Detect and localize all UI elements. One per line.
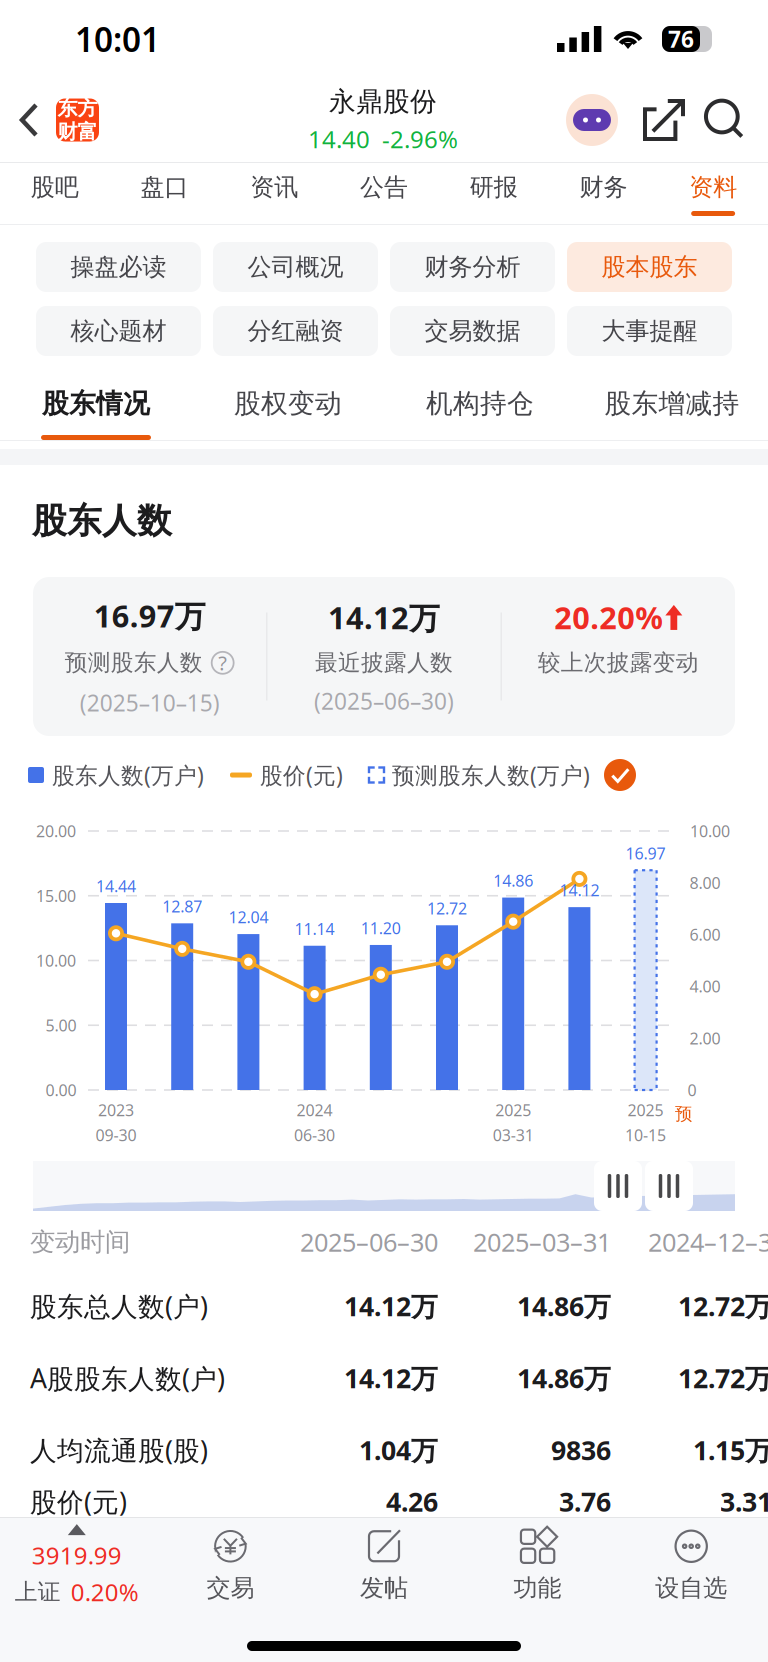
staticText: 功能 bbox=[514, 1573, 562, 1603]
button[interactable]: 股吧 bbox=[0, 163, 110, 224]
staticText: 预测股东人数(万户) bbox=[392, 760, 590, 790]
staticText: 财务分析 bbox=[424, 252, 520, 282]
button[interactable]: 财务 bbox=[549, 163, 658, 224]
button[interactable]: Back bbox=[0, 78, 56, 162]
button[interactable]: 股权变动 bbox=[192, 366, 384, 440]
staticText: 永鼎股份 bbox=[329, 85, 437, 118]
staticText: 14.86万 bbox=[517, 1360, 611, 1396]
staticText: ? bbox=[218, 649, 227, 676]
staticText: 较上次披露变动 bbox=[538, 649, 699, 677]
button[interactable]: 交易 bbox=[154, 1529, 307, 1603]
staticText: 研报 bbox=[470, 172, 518, 202]
staticText: 20.00 bbox=[36, 820, 76, 842]
staticText: 14.40 -2.96% bbox=[308, 123, 458, 155]
staticText: 10-15 bbox=[625, 1124, 666, 1146]
staticText: 人均流通股(股) bbox=[30, 1432, 208, 1468]
staticText: 财富 bbox=[57, 119, 97, 144]
button[interactable]: 研报 bbox=[439, 163, 549, 224]
staticText: 股东总人数(户) bbox=[30, 1288, 208, 1324]
button[interactable]: 操盘必读 bbox=[36, 242, 201, 292]
button[interactable]: AI assistant bbox=[564, 92, 620, 148]
button[interactable]: Range handle bbox=[645, 1161, 693, 1211]
staticText: 0.00 bbox=[45, 1079, 76, 1101]
button[interactable]: 发帖 bbox=[307, 1529, 461, 1603]
button[interactable]: Share bbox=[638, 94, 690, 146]
staticText: 14.86万 bbox=[517, 1288, 611, 1324]
staticText: 14.12万 bbox=[344, 1288, 438, 1324]
staticText: 股价(元) bbox=[260, 760, 343, 790]
staticText: 股价(元) bbox=[30, 1484, 127, 1519]
button[interactable]: East Money bbox=[56, 98, 99, 141]
staticText: 16.97 bbox=[626, 843, 666, 864]
staticText: A股股东人数(户) bbox=[30, 1360, 225, 1396]
button[interactable]: 功能 bbox=[461, 1529, 614, 1603]
staticText: 设自选 bbox=[655, 1573, 727, 1603]
staticText: 公告 bbox=[360, 172, 408, 202]
staticText: 0 bbox=[687, 1079, 696, 1101]
staticText: 11.20 bbox=[361, 917, 401, 938]
staticText: 3919.99 bbox=[32, 1539, 122, 1571]
button[interactable]: 股东情况 bbox=[0, 366, 192, 440]
staticText: 2.00 bbox=[689, 1028, 720, 1049]
staticText: 14.12万 bbox=[344, 1360, 438, 1396]
button[interactable]: 资讯 bbox=[219, 163, 329, 224]
button[interactable]: 交易数据 bbox=[390, 306, 555, 356]
button[interactable]: 分红融资 bbox=[213, 306, 378, 356]
staticText: 2025 bbox=[495, 1099, 531, 1121]
staticText: 8.00 bbox=[689, 872, 720, 893]
staticText: 上证 bbox=[15, 1578, 61, 1606]
staticText: 股吧 bbox=[31, 172, 79, 202]
button[interactable]: 核心题材 bbox=[36, 306, 201, 356]
button[interactable]: 设自选 bbox=[614, 1529, 768, 1603]
button[interactable]: 盘口 bbox=[110, 163, 219, 224]
staticText: 财务 bbox=[579, 172, 627, 202]
staticText: 分红融资 bbox=[247, 316, 343, 346]
button[interactable]: 机构持仓 bbox=[384, 366, 576, 440]
staticText: 16.97万 bbox=[94, 595, 206, 636]
staticText: 0.20% bbox=[71, 1576, 139, 1608]
staticText: 03-31 bbox=[493, 1124, 534, 1146]
staticText: 12.72万 bbox=[678, 1360, 768, 1396]
staticText: 20.20% bbox=[554, 597, 663, 638]
staticText: 12.72 bbox=[427, 898, 467, 919]
button[interactable]: 股东增减持 bbox=[576, 366, 768, 440]
staticText: 6.00 bbox=[689, 924, 720, 945]
staticText: 5.00 bbox=[45, 1015, 76, 1036]
staticText: 操盘必读 bbox=[70, 252, 166, 282]
staticText: 14.86 bbox=[493, 870, 533, 891]
staticText: 4.26 bbox=[386, 1484, 438, 1519]
staticText: 12.04 bbox=[228, 906, 268, 928]
staticText: 2025 bbox=[628, 1099, 664, 1121]
staticText: 变动时间 bbox=[30, 1226, 130, 1257]
staticText: 12.87 bbox=[162, 896, 202, 917]
button[interactable]: 股本股东 bbox=[567, 242, 732, 292]
staticText: 11.14 bbox=[295, 918, 335, 939]
button[interactable]: 财务分析 bbox=[390, 242, 555, 292]
button[interactable]: Search bbox=[702, 97, 748, 143]
staticText: 发帖 bbox=[360, 1573, 408, 1603]
staticText: 1.04万 bbox=[359, 1432, 438, 1468]
staticText: 盘口 bbox=[141, 172, 189, 202]
button[interactable]: 大事提醒 bbox=[567, 306, 732, 356]
button[interactable]: Range handle bbox=[594, 1161, 642, 1211]
staticText: (2025–06–30) bbox=[314, 686, 454, 716]
staticText: 资讯 bbox=[250, 172, 298, 202]
button[interactable]: 公司概况 bbox=[213, 242, 378, 292]
staticText: 9836 bbox=[551, 1432, 611, 1468]
staticText: 09-30 bbox=[95, 1124, 136, 1146]
staticText: 股东人数(万户) bbox=[52, 760, 204, 790]
staticText: 股东增减持 bbox=[604, 387, 739, 420]
staticText: 14.12万 bbox=[328, 597, 440, 638]
staticText: 2023 bbox=[98, 1099, 134, 1121]
button[interactable]: 公告 bbox=[329, 163, 439, 224]
staticText: 14.12 bbox=[559, 879, 599, 901]
staticText: 10:01 bbox=[75, 17, 160, 61]
button[interactable]: 资料 bbox=[658, 163, 768, 224]
staticText: 15.00 bbox=[36, 885, 76, 906]
staticText: 2024 bbox=[297, 1099, 333, 1121]
staticText: 预 bbox=[675, 1103, 692, 1125]
staticText: 股东情况 bbox=[42, 387, 150, 420]
staticText: 10.00 bbox=[36, 950, 76, 971]
staticText: 2024–12–3 bbox=[648, 1225, 768, 1259]
